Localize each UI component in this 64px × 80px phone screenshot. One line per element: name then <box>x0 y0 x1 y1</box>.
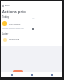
button[interactable]: Profile <box>42 72 62 77</box>
staticText: Actions prio <box>2 9 26 15</box>
staticText: All <box>32 17 35 20</box>
staticText: Send file <box>9 37 20 40</box>
staticText: Lorem ipsum dolor sit <box>2 27 24 30</box>
button[interactable]: Tasks <box>22 72 42 77</box>
staticText: Call Team <box>9 22 21 25</box>
staticText: Today <box>2 15 10 18</box>
staticText: Back <box>5 4 10 7</box>
button[interactable]: Back <box>2 3 10 8</box>
staticText: Later <box>2 32 9 35</box>
button[interactable]: Home <box>1 72 22 77</box>
button[interactable]: Add action <box>13 70 23 73</box>
